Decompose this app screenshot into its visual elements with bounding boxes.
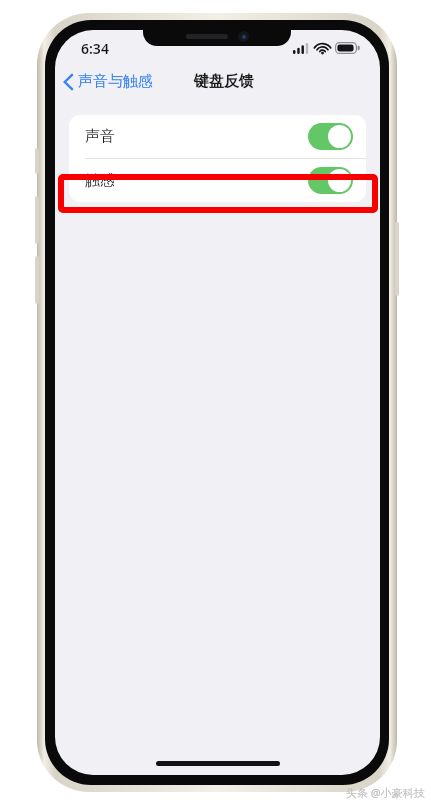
button[interactable]: 触感 [69,159,366,202]
staticText: 头条 @小豪科技 [346,785,425,800]
staticText: 6:34 [81,39,109,58]
staticText: 键盘反馈 [194,72,254,91]
button[interactable]: 声音 开关，已开启 [308,123,353,150]
button[interactable]: 声音与触感 [55,68,159,95]
button[interactable]: 声音 [69,115,366,158]
button[interactable]: 触感 开关，已开启 [308,167,353,194]
staticText: 声音 [85,127,115,146]
staticText: 触感 [85,171,115,190]
staticText: 声音与触感 [78,72,153,91]
